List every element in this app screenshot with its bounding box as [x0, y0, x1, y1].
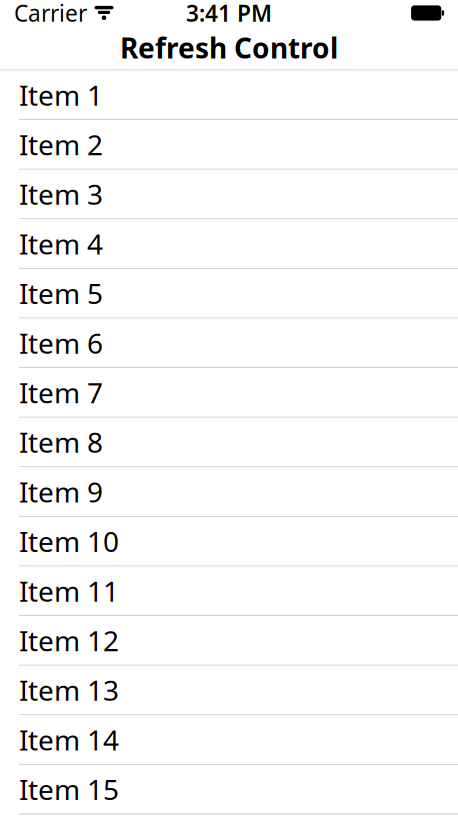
staticText: Item 15 — [19, 771, 119, 808]
staticText: Item 8 — [19, 423, 103, 461]
staticText: Carrier — [14, 0, 87, 28]
button[interactable]: Item 5 — [0, 269, 458, 318]
button[interactable]: Item 7 — [0, 368, 458, 418]
button[interactable]: Item 6 — [0, 318, 458, 368]
staticText: Item 13 — [19, 671, 119, 709]
staticText: Item 11 — [19, 572, 119, 609]
staticText: Item 10 — [19, 523, 119, 560]
button[interactable]: Item 11 — [0, 566, 458, 616]
staticText: Item 4 — [19, 225, 103, 262]
button[interactable]: Item 15 — [0, 765, 458, 814]
staticText: Item 6 — [19, 324, 103, 361]
button[interactable]: Item 10 — [0, 517, 458, 566]
button[interactable]: Item 1 — [0, 70, 458, 120]
button[interactable]: Item 12 — [0, 616, 458, 666]
staticText: Item 5 — [19, 275, 103, 312]
button[interactable]: Item 3 — [0, 170, 458, 219]
staticText: 3:41 PM — [186, 0, 272, 28]
staticText: Item 2 — [19, 126, 103, 163]
button[interactable]: Item 14 — [0, 715, 458, 765]
staticText: Item 1 — [19, 76, 103, 113]
staticText: Item 9 — [19, 473, 103, 510]
staticText: Refresh Control — [120, 29, 338, 66]
button[interactable]: Item 2 — [0, 120, 458, 170]
staticText: Item 12 — [19, 622, 119, 659]
staticText: Item 14 — [19, 721, 119, 758]
staticText: Item 7 — [19, 374, 103, 411]
button[interactable]: Item 13 — [0, 666, 458, 715]
button[interactable]: Item 8 — [0, 418, 458, 467]
button[interactable]: Item 4 — [0, 219, 458, 269]
button[interactable]: Item 9 — [0, 467, 458, 517]
staticText: Item 3 — [19, 175, 103, 213]
